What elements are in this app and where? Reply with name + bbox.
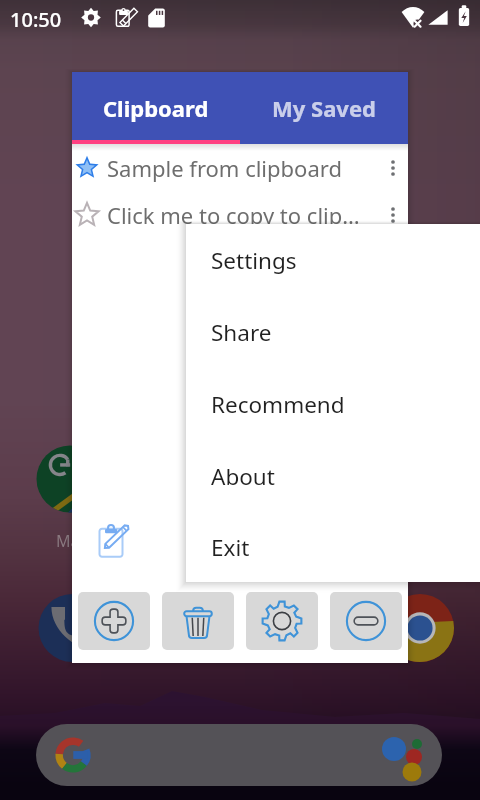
- staticText: Share: [211, 317, 272, 348]
- staticText: Click me to copy to clip…: [107, 200, 378, 230]
- staticText: Maps: [56, 530, 97, 552]
- button[interactable]: Sample from clipboard: [72, 144, 408, 191]
- staticText: 10:50: [10, 6, 62, 33]
- button[interactable]: My Saved: [240, 72, 408, 144]
- button[interactable]: Exit: [186, 512, 480, 582]
- button[interactable]: Recommend: [186, 368, 480, 440]
- button[interactable]: Add: [78, 592, 150, 650]
- staticText: Exit: [211, 532, 250, 563]
- staticText: Settings: [211, 245, 297, 276]
- staticText: Sample from clipboard: [107, 153, 378, 183]
- button[interactable]: Settings: [246, 592, 318, 650]
- button[interactable]: Share: [186, 296, 480, 368]
- staticText: Clipboard: [103, 93, 209, 123]
- button[interactable]: Remove: [330, 592, 402, 650]
- button[interactable]: Clipboard: [72, 72, 240, 144]
- staticText: My Saved: [272, 93, 376, 123]
- button[interactable]: Click me to copy to clip…: [72, 191, 408, 238]
- button[interactable]: More options: [378, 144, 408, 191]
- button[interactable]: Settings: [186, 224, 480, 296]
- button[interactable]: Delete: [162, 592, 234, 650]
- button[interactable]: About: [186, 440, 480, 512]
- staticText: Recommend: [211, 389, 345, 420]
- button[interactable]: More options: [378, 191, 408, 238]
- staticText: About: [211, 461, 275, 492]
